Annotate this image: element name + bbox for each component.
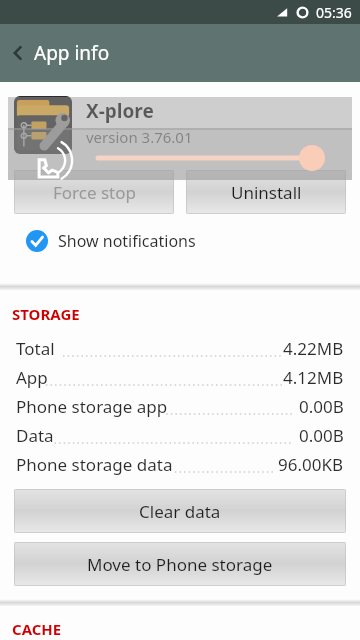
staticText: 0.00B bbox=[299, 395, 344, 418]
staticText: Clear data bbox=[139, 500, 221, 523]
staticText: App info bbox=[34, 40, 110, 66]
other: Back bbox=[10, 45, 26, 61]
staticText: Show notifications bbox=[58, 230, 196, 252]
staticText: Force stop bbox=[53, 181, 136, 204]
staticText: 4.12MB bbox=[283, 366, 344, 389]
staticText: Phone storage app bbox=[16, 395, 168, 418]
staticText: Data bbox=[16, 424, 54, 447]
button[interactable]: Clear data bbox=[14, 489, 346, 533]
button[interactable]: Phone storage app bbox=[0, 392, 360, 421]
staticText: App bbox=[16, 366, 48, 389]
other: Call volume bbox=[36, 152, 62, 178]
button[interactable]: App bbox=[0, 363, 360, 392]
button[interactable]: Phone storage data bbox=[0, 450, 360, 479]
staticText: 05:36 bbox=[316, 3, 352, 22]
staticText: version 3.76.01 bbox=[86, 127, 193, 147]
other: Volume slider bbox=[90, 147, 330, 169]
staticText: 0.00B bbox=[299, 424, 344, 447]
staticText: Uninstall bbox=[231, 181, 302, 204]
staticText: Total bbox=[16, 337, 55, 360]
staticText: Move to Phone storage bbox=[87, 553, 273, 576]
button[interactable]: Uninstall bbox=[186, 170, 346, 214]
staticText: X-plore bbox=[86, 98, 154, 124]
button[interactable]: Move to Phone storage bbox=[14, 542, 346, 586]
staticText: STORAGE bbox=[12, 304, 80, 324]
staticText: CACHE bbox=[12, 619, 62, 639]
button[interactable]: Back bbox=[0, 24, 360, 82]
button[interactable]: Data bbox=[0, 421, 360, 450]
button[interactable]: Total bbox=[0, 334, 360, 363]
staticText: 96.00KB bbox=[278, 453, 344, 476]
button[interactable]: Show notifications bbox=[0, 228, 360, 256]
button[interactable]: Force stop bbox=[14, 170, 174, 214]
staticText: 4.22MB bbox=[283, 337, 344, 360]
staticText: Phone storage data bbox=[16, 453, 173, 476]
